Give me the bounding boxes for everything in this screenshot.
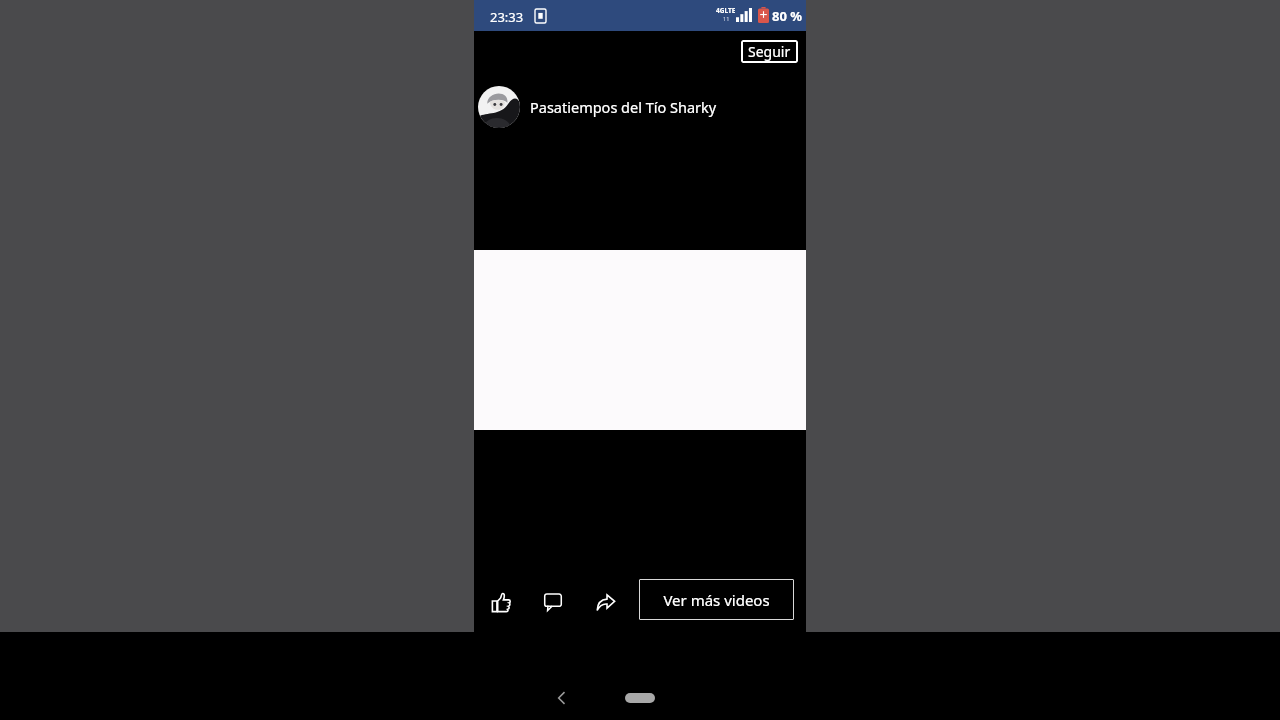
button[interactable]: Compartir: [592, 589, 618, 615]
staticText: 4GLTE: [716, 6, 736, 15]
other: Channel avatar: [478, 86, 520, 128]
button[interactable]: Ver más videos: [639, 579, 794, 620]
staticText: 80 %: [772, 7, 802, 25]
button[interactable]: Inicio: [625, 693, 655, 703]
button[interactable]: Atrás: [548, 684, 576, 712]
staticText: 23:33: [490, 8, 524, 26]
button[interactable]: Seguir: [741, 40, 798, 63]
button[interactable]: Channel avatar: [478, 85, 810, 129]
staticText: Seguir: [748, 42, 791, 61]
staticText: Pasatiempos del Tío Sharky: [530, 97, 717, 117]
button[interactable]: Me gusta: [488, 589, 514, 615]
button[interactable]: Comentarios: [540, 589, 566, 615]
staticText: Ver más videos: [663, 590, 770, 610]
staticText: 11: [723, 15, 730, 22]
